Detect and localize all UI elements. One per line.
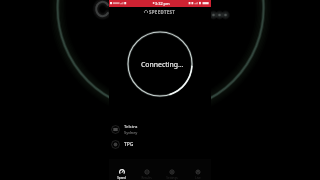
staticText: SPEEDTEST [149,9,176,15]
button[interactable]: Live [185,159,211,180]
button[interactable]: Speed [109,159,134,180]
staticText: Settings [166,176,178,180]
button[interactable]: Telstra [109,123,211,136]
staticText: Results [141,176,152,180]
button[interactable]: Results [134,159,159,180]
button[interactable]: Settings [159,159,185,180]
button[interactable]: TPG [109,139,211,150]
staticText: Speed [117,176,126,180]
staticText: Connecting… [141,60,184,69]
staticText: Sydney [124,130,138,135]
staticText: Telstra [124,124,138,130]
staticText: 3:32 pm [155,1,170,6]
staticText: Live [195,176,201,180]
staticText: TPG [124,141,134,148]
